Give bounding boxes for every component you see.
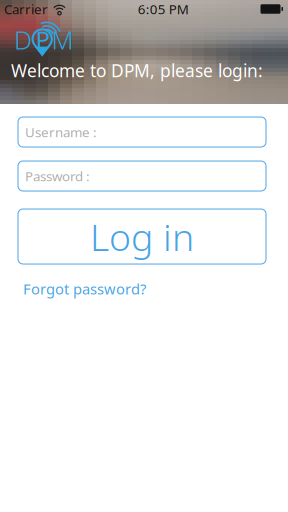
staticText: Forgot password? [23,279,146,298]
staticText: Username : [25,123,97,141]
staticText: Password : [25,167,90,185]
button[interactable]: Password : [18,161,266,191]
staticText: Welcome to DPM, please login: [11,59,263,82]
staticText: 6:05 PM [138,0,189,18]
button[interactable]: Log in [18,209,266,264]
staticText: D [14,23,32,56]
staticText: P [35,23,50,55]
staticText: M [52,23,74,56]
button[interactable]: Forgot password? [18,276,151,301]
staticText: Log in [90,212,194,261]
button[interactable]: Username : [18,117,266,147]
staticText: Carrier [4,0,48,18]
